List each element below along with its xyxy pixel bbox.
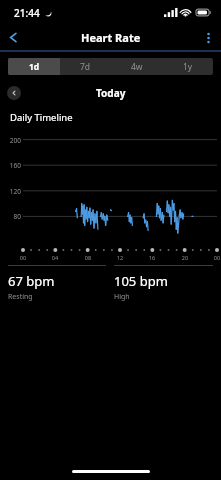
button[interactable]: 1d: [8, 58, 60, 75]
staticText: 08: [83, 254, 93, 261]
button[interactable]: 7d: [60, 58, 111, 75]
staticText: 1y: [183, 61, 193, 73]
staticText: Daily Timeline: [10, 111, 73, 124]
staticText: Heart Rate: [81, 30, 141, 45]
staticText: 20: [180, 254, 190, 261]
staticText: 4w: [131, 61, 143, 73]
staticText: High: [114, 292, 130, 302]
staticText: 7d: [80, 61, 91, 73]
button[interactable]: More options: [195, 25, 221, 50]
staticText: Resting: [8, 292, 33, 302]
staticText: 80: [2, 212, 21, 221]
button[interactable]: Back: [0, 25, 26, 50]
staticText: 120: [2, 187, 21, 196]
button[interactable]: 1y: [162, 58, 213, 75]
staticText: 200: [2, 136, 21, 145]
staticText: 04: [50, 254, 60, 261]
button[interactable]: 67 bpm: [8, 265, 106, 306]
staticText: 160: [2, 161, 21, 170]
button[interactable]: 4w: [111, 58, 162, 75]
staticText: 1d: [29, 61, 40, 73]
staticText: 12: [115, 254, 125, 261]
staticText: 67 bpm: [8, 272, 55, 290]
staticText: 21:44: [14, 6, 40, 20]
staticText: 105 bpm: [114, 272, 168, 290]
staticText: Today: [96, 86, 126, 100]
staticText: 00: [212, 254, 221, 261]
staticText: 00: [18, 254, 28, 261]
staticText: 16: [147, 254, 157, 261]
button[interactable]: Previous day: [7, 86, 21, 100]
button[interactable]: 105 bpm: [114, 265, 213, 306]
